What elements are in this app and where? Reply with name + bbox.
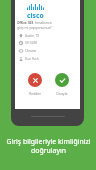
- button[interactable]: Chrome: [19, 48, 61, 54]
- staticText: Onayla: [56, 91, 68, 96]
- staticText: Giriş bilgileriyle kimliğinizi doğrulayı…: [6, 137, 91, 155]
- staticText: Chrome: [25, 49, 37, 53]
- other: Reddet: [28, 73, 42, 87]
- button[interactable]: Duo Push: [19, 56, 61, 62]
- button[interactable]: Reddet: [28, 73, 42, 96]
- button[interactable]: 09:14:08: [19, 40, 61, 46]
- staticText: Office 365: [17, 20, 34, 24]
- staticText: giriş mi yapıyorsunuz?: [17, 25, 52, 29]
- staticText: Reddet: [29, 91, 41, 96]
- staticText: Austin, TX: [25, 34, 39, 38]
- other: Onayla: [55, 73, 69, 87]
- button[interactable]: Onayla: [55, 73, 69, 96]
- staticText: 09:14:08: [25, 41, 37, 45]
- button[interactable]: Austin, TX: [19, 33, 61, 39]
- staticText: Duo Push: [25, 57, 39, 61]
- staticText: cisco: [27, 11, 44, 20]
- staticText: hesabınıza: [35, 20, 52, 24]
